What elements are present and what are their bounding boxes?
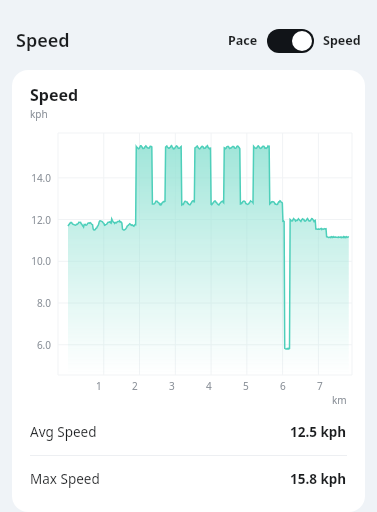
button[interactable]: Switch between pace and speed bbox=[267, 29, 314, 53]
staticText: Avg Speed bbox=[30, 423, 97, 441]
staticText: kph bbox=[30, 107, 48, 121]
staticText: 12.0 bbox=[12, 213, 51, 227]
staticText: 15.8 kph bbox=[290, 470, 347, 488]
staticText: 14.0 bbox=[12, 171, 51, 185]
staticText: 12.5 kph bbox=[290, 423, 347, 441]
staticText: 2 bbox=[132, 379, 138, 393]
staticText: 8.0 bbox=[12, 296, 51, 310]
staticText: Max Speed bbox=[30, 470, 100, 488]
staticText: 7 bbox=[317, 379, 323, 393]
staticText: 1 bbox=[96, 379, 102, 393]
staticText: 6.0 bbox=[12, 338, 51, 352]
button[interactable]: Avg Speed bbox=[12, 409, 365, 455]
staticText: 4 bbox=[206, 379, 212, 393]
staticText: 6 bbox=[280, 379, 286, 393]
staticText: Speed bbox=[323, 32, 361, 49]
staticText: Speed bbox=[30, 84, 79, 106]
button[interactable]: Max Speed bbox=[12, 456, 365, 502]
staticText: 10.0 bbox=[12, 254, 51, 268]
staticText: Pace bbox=[228, 32, 258, 49]
staticText: km bbox=[332, 393, 347, 407]
staticText: 5 bbox=[243, 379, 249, 393]
staticText: Speed bbox=[16, 28, 70, 53]
staticText: 3 bbox=[169, 379, 175, 393]
